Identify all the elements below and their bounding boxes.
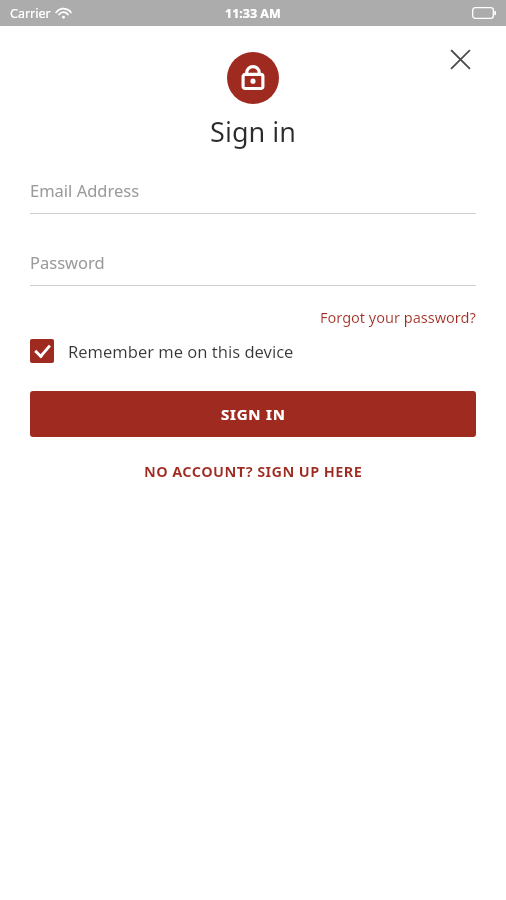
button[interactable]: Password [30, 249, 476, 286]
staticText: Password [30, 251, 105, 273]
staticText: SIGN IN [221, 404, 286, 424]
button[interactable]: SIGN IN [30, 391, 476, 437]
staticText: 11:33 AM [225, 5, 281, 22]
staticText: Sign in [210, 113, 296, 150]
button[interactable]: Forgot your password? [320, 307, 476, 327]
staticText: Email Address [30, 179, 140, 201]
button[interactable]: Close [440, 39, 480, 79]
staticText: NO ACCOUNT? SIGN UP HERE [144, 461, 363, 481]
button[interactable]: Email Address [30, 177, 476, 214]
staticText: Remember me on this device [68, 340, 294, 362]
staticText: Forgot your password? [320, 307, 476, 327]
staticText: Carrier [10, 5, 51, 22]
button[interactable]: NO ACCOUNT? SIGN UP HERE [144, 461, 363, 481]
button[interactable]: Remember me on this device [30, 339, 294, 363]
